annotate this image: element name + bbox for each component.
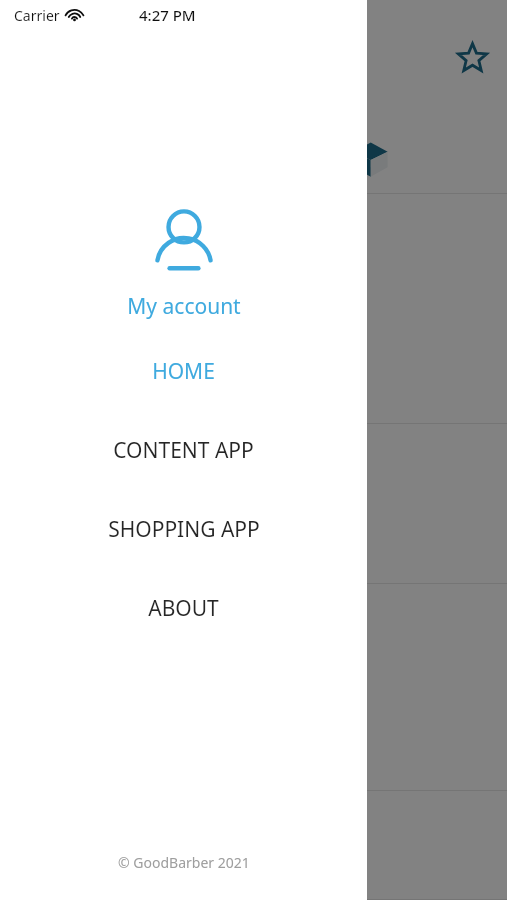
button[interactable]: Whether you are a seasoned user: [0, 194, 507, 424]
button[interactable]: SHOPPING APP: [0, 511, 367, 547]
staticText: Whether you are a seasoned user: [18, 294, 318, 320]
staticText: © GoodBarber 2021: [118, 853, 250, 872]
staticText: 4:27 PM: [139, 5, 196, 25]
button[interactable]: CONTENT APP: [0, 432, 367, 468]
staticText: HOME: [152, 357, 215, 386]
button[interactable]: My account: [0, 288, 367, 324]
staticText: SHOPPING APP: [108, 515, 260, 544]
staticText: CONTENT APP: [113, 436, 254, 465]
button[interactable]: HOME: [0, 353, 367, 389]
staticText: ABOUT: [148, 594, 219, 623]
button[interactable]: Offering a delivery service in your: [0, 424, 507, 584]
button[interactable]: My account: [142, 200, 226, 284]
button[interactable]: Gift Cards are a unique, a: [0, 791, 507, 900]
button[interactable]: Favorite: [452, 38, 492, 78]
button[interactable]: The new Click & Collect add-on can: [0, 584, 507, 791]
button[interactable]: ABOUT: [0, 590, 367, 626]
staticText: Carrier: [14, 6, 60, 25]
staticText: My account: [127, 292, 241, 321]
staticText: app is a great way of offering users...: [18, 508, 348, 534]
